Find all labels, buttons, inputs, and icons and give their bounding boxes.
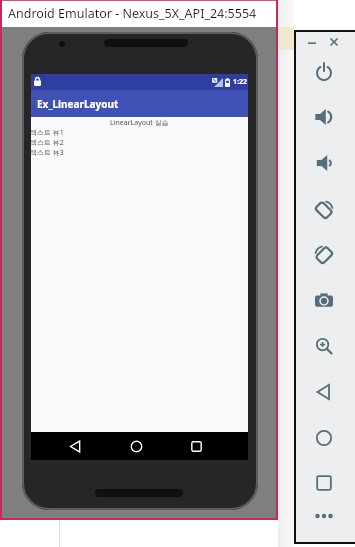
button[interactable] — [315, 383, 333, 401]
staticText: Ex_LinearLayout — [37, 97, 119, 111]
button[interactable] — [315, 292, 333, 310]
staticText: Android Emulator - Nexus_5X_API_24:5554 — [8, 5, 257, 22]
button[interactable] — [315, 474, 333, 492]
button[interactable] — [69, 440, 82, 453]
staticText: 1:22 — [233, 77, 247, 87]
button[interactable]: Ex_LinearLayout — [31, 90, 248, 117]
button[interactable] — [190, 440, 203, 453]
button[interactable] — [315, 507, 333, 525]
staticText: 텍스트 뷰1 — [30, 128, 64, 138]
button[interactable] — [314, 245, 334, 265]
staticText: LinearLayout 실습 — [110, 118, 169, 128]
button[interactable] — [315, 108, 333, 126]
button[interactable] — [315, 429, 333, 447]
button[interactable] — [130, 440, 143, 453]
button[interactable] — [328, 36, 340, 48]
button[interactable] — [315, 337, 333, 355]
button[interactable] — [315, 63, 333, 81]
staticText: 텍스트 뷰3 — [30, 148, 64, 158]
button[interactable] — [315, 154, 333, 172]
button[interactable] — [306, 36, 318, 48]
staticText: 텍스트 뷰2 — [30, 138, 64, 148]
button[interactable] — [314, 200, 334, 220]
